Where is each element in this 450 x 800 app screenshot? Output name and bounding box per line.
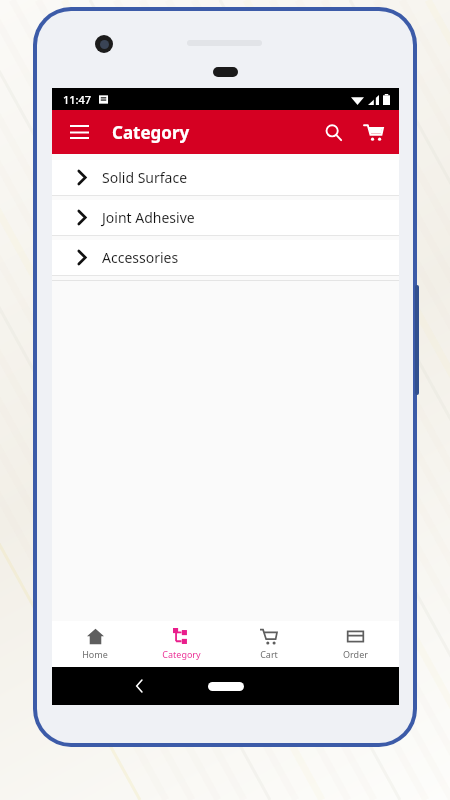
staticText: Category bbox=[162, 648, 201, 660]
button[interactable]: Solid Surface bbox=[52, 160, 399, 200]
staticText: Category bbox=[112, 121, 190, 144]
staticText: Accessories bbox=[102, 248, 179, 267]
button[interactable]: Cart bbox=[353, 112, 393, 152]
button[interactable]: Menu bbox=[60, 113, 98, 151]
staticText: Solid Surface bbox=[102, 168, 188, 187]
button[interactable]: Order bbox=[312, 621, 399, 667]
button[interactable]: Joint Adhesive bbox=[52, 200, 399, 240]
button[interactable]: Category bbox=[138, 621, 225, 667]
staticText: Order bbox=[343, 648, 368, 660]
staticText: Home bbox=[82, 648, 108, 660]
button[interactable]: Cart bbox=[225, 621, 312, 667]
button[interactable]: Home bbox=[52, 621, 138, 667]
staticText: Joint Adhesive bbox=[102, 208, 195, 227]
button[interactable]: Accessories bbox=[52, 240, 399, 280]
staticText: Cart bbox=[260, 648, 278, 660]
staticText: 11:47 bbox=[63, 92, 92, 107]
button[interactable]: Search bbox=[313, 112, 353, 152]
